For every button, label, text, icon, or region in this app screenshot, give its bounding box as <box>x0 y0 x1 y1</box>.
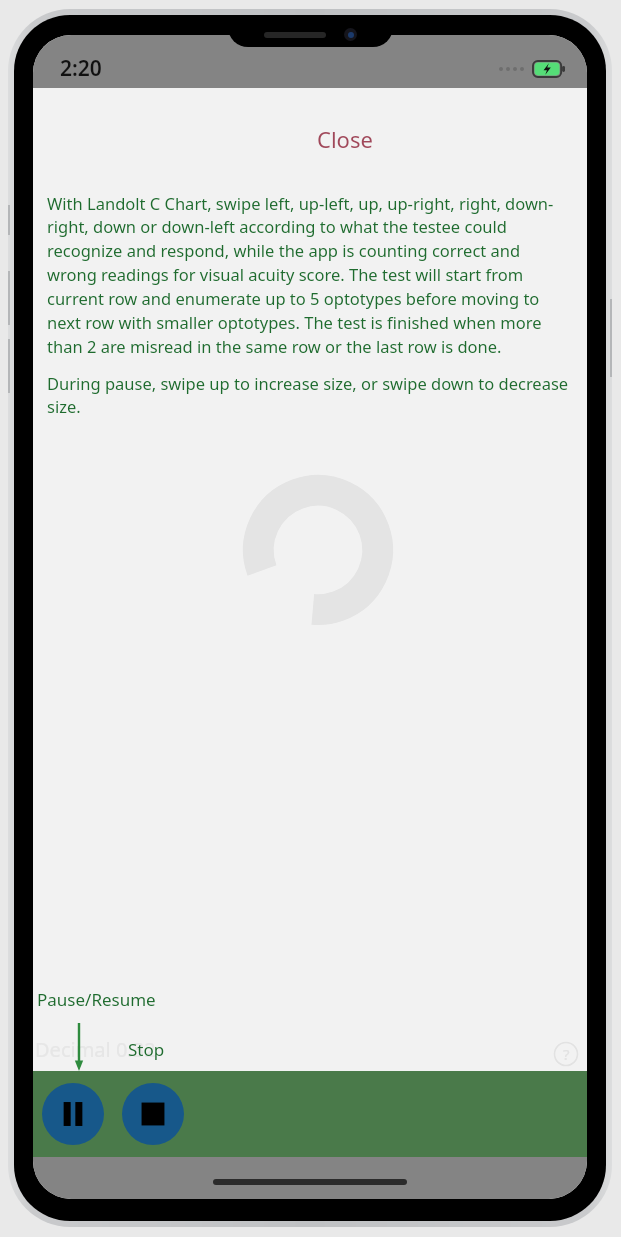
staticText: With Landolt C Chart, swipe left, up-lef… <box>47 192 573 358</box>
staticText: ? <box>563 1044 570 1064</box>
button[interactable]: Stop <box>122 1083 184 1145</box>
staticText: Stop <box>128 1038 165 1061</box>
button[interactable]: Close <box>305 118 385 160</box>
staticText: 2:20 <box>60 54 102 83</box>
staticText: Close <box>317 124 373 154</box>
staticText: Pause/Resume <box>37 988 156 1011</box>
staticText: Decimal 0.32 <box>35 1036 156 1063</box>
button[interactable]: Pause or Resume <box>42 1083 104 1145</box>
staticText: During pause, swipe up to increase size,… <box>47 372 573 418</box>
button[interactable]: Help <box>553 1041 579 1067</box>
